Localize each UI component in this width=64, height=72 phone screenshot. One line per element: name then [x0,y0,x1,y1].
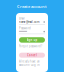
staticText: Password [19,26,31,30]
staticText: Email [19,17,25,20]
staticText: Already have an account? Log in [19,60,40,67]
staticText: •••••••• [19,30,27,33]
staticText: Sign up [26,38,37,42]
staticText: Create account [17,4,47,9]
button[interactable]: Sign up [19,37,45,43]
staticText: name@mail.com [19,20,39,24]
button[interactable]: Cancel [19,53,45,58]
staticText: Forgot password? [19,44,42,48]
staticText: Cancel [27,53,37,57]
